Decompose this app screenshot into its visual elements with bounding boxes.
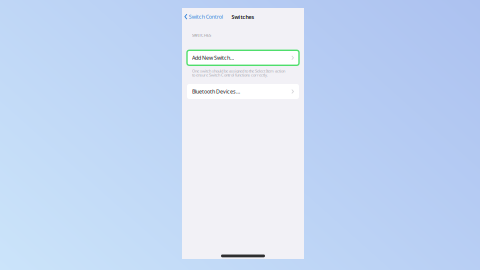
staticText: Switches (231, 13, 254, 20)
button[interactable]: Switch Control (182, 11, 226, 23)
staticText: SWITCHES (192, 33, 211, 38)
staticText: Add New Switch… (192, 54, 234, 61)
staticText: Bluetooth Devices… (192, 88, 240, 95)
staticText: Switch Control (189, 13, 223, 20)
button[interactable]: Bluetooth Devices… (187, 84, 299, 99)
staticText: One switch should be assigned to the Sel… (192, 68, 285, 78)
button[interactable]: Add New Switch… (187, 50, 299, 65)
